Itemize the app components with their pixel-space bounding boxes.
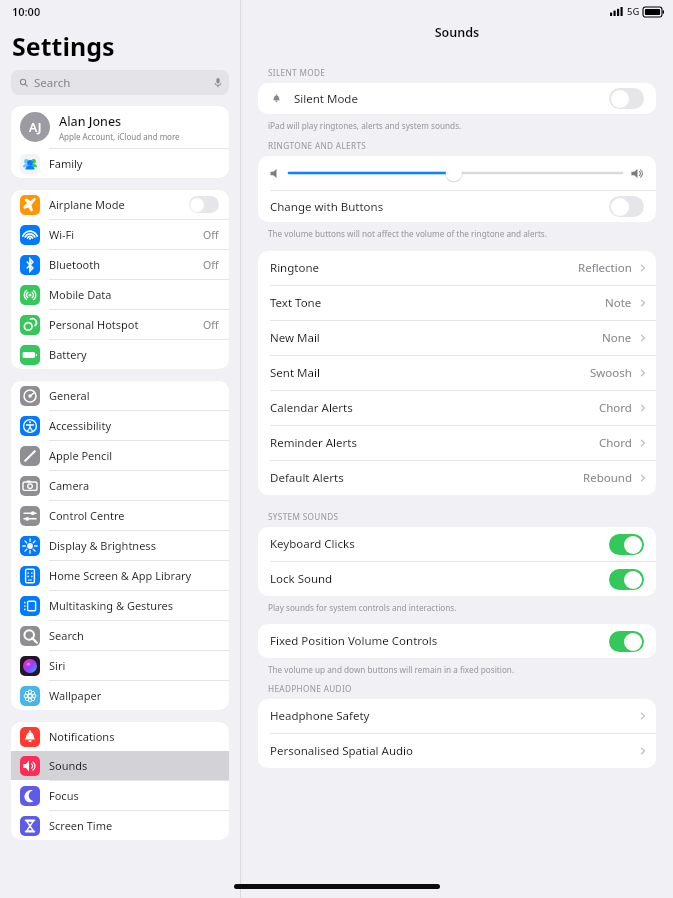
staticText: The volume buttons will not affect the v… [268,228,547,239]
button[interactable]: Bluetooth [11,250,229,279]
button[interactable]: AJ [11,106,229,148]
staticText: Change with Buttons [270,199,384,215]
button[interactable]: General [11,381,229,410]
staticText: Keyboard Clicks [270,536,355,552]
button[interactable]: Headphone Safety [258,699,656,733]
button[interactable]: Search [11,621,229,650]
button[interactable]: Battery [11,340,229,369]
staticText: Reflection [578,260,632,276]
staticText: Default Alerts [270,470,344,486]
staticText: Wi-Fi [49,227,75,242]
staticText: SILENT MODE [268,67,326,78]
staticText: RINGTONE AND ALERTS [268,140,367,151]
staticText: Airplane Mode [49,197,125,212]
staticText: AJ [29,119,42,136]
staticText: Siri [49,658,66,673]
button[interactable]: Screen Time [11,811,229,840]
button[interactable]: Airplane Mode [11,190,229,219]
staticText: Off [203,258,219,272]
staticText: Play sounds for system controls and inte… [268,602,457,613]
button[interactable]: Sent Mail [258,356,656,390]
button[interactable]: Lock Sound [258,562,656,596]
button[interactable]: Accessibility [11,411,229,440]
button[interactable]: Silent Mode toggle [609,88,644,109]
staticText: Off [203,318,219,332]
button[interactable]: Wallpaper [11,681,229,710]
button[interactable]: Change with Buttons toggle [609,196,644,217]
button[interactable]: Focus [11,781,229,810]
button[interactable]: Search [11,70,229,95]
staticText: Silent Mode [294,91,358,107]
button[interactable]: Siri [11,651,229,680]
staticText: Control Centre [49,508,125,523]
staticText: Off [203,228,219,242]
button[interactable]: Mobile Data [11,280,229,309]
staticText: Alan Jones [59,113,122,130]
staticText: Personalised Spatial Audio [270,743,414,759]
staticText: 10:00 [12,4,41,19]
staticText: Sounds [49,758,88,773]
button[interactable]: Notifications [11,722,229,751]
button[interactable]: Fixed Position Volume Controls [258,624,656,658]
staticText: 5G [627,5,640,18]
staticText: Headphone Safety [270,708,370,724]
staticText: Calendar Alerts [270,400,353,416]
button[interactable]: Ringtone [258,251,656,285]
staticText: Lock Sound [270,571,333,587]
staticText: Text Tone [270,295,322,311]
button[interactable]: Multitasking & Gestures [11,591,229,620]
button[interactable]: Text Tone [258,286,656,320]
button[interactable]: Silent Mode [258,83,656,114]
button[interactable]: Home Screen & App Library [11,561,229,590]
staticText: Accessibility [49,418,112,433]
button[interactable]: Personal Hotspot [11,310,229,339]
button[interactable]: Reminder Alerts [258,426,656,460]
button[interactable]: Personalised Spatial Audio [258,734,656,768]
staticText: HEADPHONE AUDIO [268,683,352,694]
staticText: Bluetooth [49,257,101,272]
button[interactable]: New Mail [258,321,656,355]
staticText: Display & Brightness [49,538,156,553]
button[interactable]: Wi-Fi [11,220,229,249]
button[interactable]: Apple Pencil [11,441,229,470]
staticText: Settings [12,29,115,63]
button[interactable]: Family [11,149,229,178]
button[interactable]: Default Alerts [258,461,656,495]
staticText: Personal Hotspot [49,317,139,332]
button[interactable]: Lock Sound toggle [609,569,644,590]
staticText: Fixed Position Volume Controls [270,633,438,649]
staticText: Swoosh [590,365,632,381]
button[interactable]: Display & Brightness [11,531,229,560]
staticText: Note [605,295,632,311]
staticText: Battery [49,347,87,362]
staticText: Focus [49,788,79,803]
button[interactable]: Airplane Mode toggle [189,196,219,213]
button[interactable]: Camera [11,471,229,500]
staticText: Mobile Data [49,287,112,302]
staticText: iPad will play ringtones, alerts and sys… [268,120,462,131]
button[interactable]: Keyboard Clicks toggle [609,534,644,555]
button[interactable]: Control Centre [11,501,229,530]
staticText: None [602,330,632,346]
staticText: Sent Mail [270,365,320,381]
button[interactable]: Fixed Position Volume Controls toggle [609,631,644,652]
staticText: Notifications [49,729,115,744]
staticText: Reminder Alerts [270,435,357,451]
staticText: Chord [599,400,632,416]
staticText: Sounds [241,24,673,41]
staticText: The volume up and down buttons will rema… [268,664,515,675]
staticText: Chord [599,435,632,451]
staticText: Multitasking & Gestures [49,598,173,613]
staticText: SYSTEM SOUNDS [268,511,339,522]
staticText: Apple Account, iCloud and more [59,131,180,142]
button[interactable]: Sounds [11,751,229,780]
button[interactable]: Keyboard Clicks [258,527,656,561]
button[interactable]: Change with Buttons [258,191,656,222]
staticText: General [49,388,90,403]
staticText: Rebound [583,470,632,486]
button[interactable]: Calendar Alerts [258,391,656,425]
staticText: Search [49,628,84,643]
staticText: Ringtone [270,260,320,276]
staticText: New Mail [270,330,320,346]
staticText: Search [34,75,71,91]
